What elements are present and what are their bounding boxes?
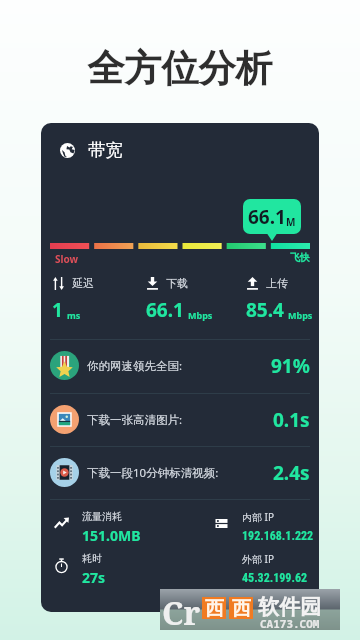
staticText: 耗时 bbox=[82, 552, 102, 565]
staticText: CA173.COM bbox=[260, 616, 320, 631]
staticText: M bbox=[286, 215, 296, 229]
staticText: 1 bbox=[52, 297, 63, 323]
staticText: 下载 bbox=[166, 276, 188, 290]
staticText: 45.32.199.62 bbox=[242, 571, 308, 585]
staticText: 流量消耗 bbox=[82, 510, 122, 523]
staticText: Slow bbox=[55, 252, 79, 266]
staticText: 66.1 bbox=[248, 204, 286, 230]
staticText: Mbps bbox=[288, 309, 313, 321]
staticText: 上传 bbox=[266, 276, 288, 290]
staticText: 西 bbox=[205, 597, 224, 619]
staticText: 下载一段10分钟标清视频: bbox=[87, 465, 219, 481]
staticText: ms bbox=[67, 309, 81, 321]
staticText: 全方位分析 bbox=[0, 45, 360, 92]
button[interactable]: 流量消耗 bbox=[54, 510, 141, 548]
button[interactable]: 下载一段10分钟标清视频: bbox=[49, 446, 310, 499]
button[interactable]: 外部 IP bbox=[214, 552, 308, 590]
staticText: 内部 IP bbox=[242, 510, 275, 524]
staticText: 软件园 bbox=[258, 594, 321, 620]
staticText: 0.1s bbox=[273, 407, 310, 433]
staticText: Mbps bbox=[188, 309, 213, 321]
staticText: 带宽 bbox=[88, 139, 123, 161]
staticText: Cr bbox=[162, 591, 201, 632]
staticText: 192.168.1.222 bbox=[242, 529, 314, 543]
staticText: 2.4s bbox=[273, 460, 310, 486]
staticText: 你的网速领先全国: bbox=[87, 358, 183, 374]
staticText: 27s bbox=[82, 568, 106, 587]
staticText: 91% bbox=[271, 353, 310, 379]
staticText: 151.0MB bbox=[82, 526, 141, 545]
button[interactable]: 耗时 bbox=[54, 552, 106, 590]
staticText: 延迟 bbox=[72, 276, 94, 290]
staticText: 外部 IP bbox=[242, 552, 275, 566]
button[interactable]: 内部 IP bbox=[214, 510, 314, 548]
staticText: 西 bbox=[232, 597, 251, 619]
staticText: 飞快 bbox=[290, 251, 310, 264]
staticText: 66.1 bbox=[146, 297, 184, 323]
staticText: 下载一张高清图片: bbox=[87, 412, 183, 428]
staticText: 85.4 bbox=[246, 297, 284, 323]
button[interactable]: 下载一张高清图片: bbox=[49, 393, 310, 446]
button[interactable]: 你的网速领先全国: bbox=[49, 339, 310, 392]
